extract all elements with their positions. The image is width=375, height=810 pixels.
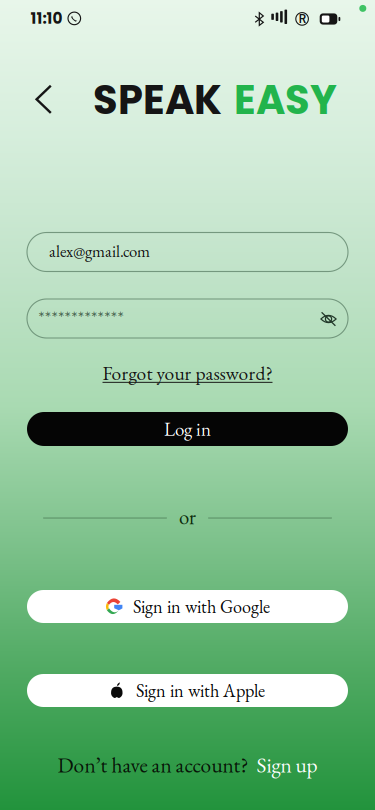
button[interactable]: Sign in with Apple — [27, 674, 348, 707]
button[interactable]: Log in — [27, 412, 348, 446]
staticText: or — [179, 503, 196, 530]
staticText: Don’t have an account? — [57, 751, 248, 779]
button[interactable]: Sign in with Google — [27, 590, 348, 623]
staticText: SPEAK — [93, 72, 222, 128]
staticText: ************* — [38, 306, 123, 330]
staticText: Sign up — [256, 751, 317, 779]
staticText: Sign in with Apple — [136, 679, 265, 702]
staticText: Sign in with Google — [133, 595, 270, 618]
staticText: Forgot your password? — [102, 360, 272, 386]
button[interactable]: Sign up — [256, 751, 317, 779]
staticText: Log in — [164, 417, 211, 441]
staticText: EASY — [234, 72, 337, 128]
button[interactable]: Back — [21, 77, 65, 121]
button[interactable]: Show password — [312, 304, 344, 334]
staticText: R — [299, 12, 306, 26]
button[interactable]: Forgot your password? — [102, 360, 272, 386]
staticText: 11:10 — [30, 8, 62, 29]
staticText: alex@gmail.com — [49, 240, 150, 262]
